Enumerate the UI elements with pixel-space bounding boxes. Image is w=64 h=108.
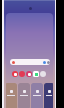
button[interactable]: Card (6, 83, 17, 108)
button[interactable]: App (12, 71, 18, 77)
button[interactable]: Search (10, 59, 50, 65)
button[interactable]: App (26, 71, 32, 77)
button[interactable]: App (19, 71, 25, 77)
button[interactable]: Card (18, 83, 30, 108)
button[interactable]: Card (44, 83, 53, 108)
button[interactable]: Card (31, 83, 43, 108)
button[interactable]: Play Store (33, 71, 39, 77)
button[interactable]: App (40, 71, 46, 77)
